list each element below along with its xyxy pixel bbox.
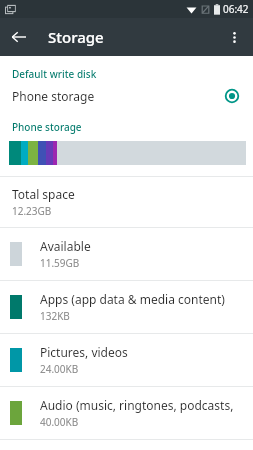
- staticText: Pictures, videos: [40, 344, 128, 360]
- button[interactable]: Phone storage: [0, 81, 253, 111]
- button[interactable]: Apps (app data & media content): [0, 281, 253, 333]
- staticText: Default write disk: [12, 67, 97, 81]
- staticText: 12.23GB: [12, 204, 52, 218]
- staticText: Phone storage: [12, 88, 225, 104]
- staticText: Phone storage: [12, 120, 82, 134]
- staticText: 24.00KB: [40, 362, 79, 376]
- button[interactable]: Back: [0, 18, 38, 56]
- button[interactable]: Pictures, videos: [0, 334, 253, 386]
- staticText: 11.59GB: [40, 256, 80, 270]
- staticText: 06:42: [223, 2, 249, 16]
- staticText: Storage: [48, 27, 104, 47]
- staticText: Audio (music, ringtones, podcasts, et..: [40, 397, 253, 413]
- staticText: Total space: [12, 186, 75, 202]
- staticText: 40.00KB: [40, 415, 79, 429]
- staticText: Available: [40, 238, 91, 254]
- button[interactable]: Audio (music, ringtones, podcasts, et..: [0, 387, 253, 439]
- staticText: Apps (app data & media content): [40, 291, 225, 307]
- button[interactable]: Total space: [0, 177, 253, 227]
- button[interactable]: More options: [215, 18, 253, 56]
- staticText: 132KB: [40, 309, 70, 323]
- button[interactable]: Available: [0, 228, 253, 280]
